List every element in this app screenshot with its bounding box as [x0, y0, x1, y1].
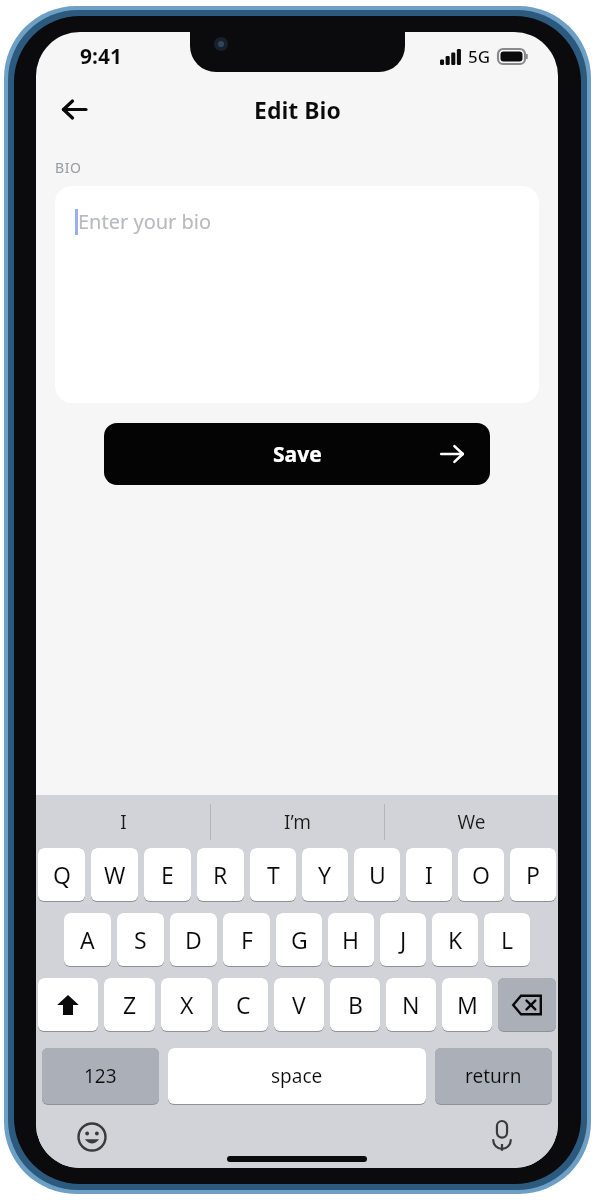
button[interactable]: J [380, 913, 426, 966]
button[interactable]: I [36, 795, 210, 848]
button[interactable]: K [432, 913, 478, 966]
button[interactable] [38, 978, 98, 1031]
button[interactable]: space [168, 1048, 426, 1104]
button[interactable]: B [330, 978, 380, 1031]
staticText: W [104, 859, 126, 890]
staticText: G [291, 924, 308, 955]
button[interactable]: X [161, 978, 212, 1031]
staticText: Save [273, 440, 322, 469]
staticText: N [402, 989, 420, 1020]
button[interactable]: C [218, 978, 268, 1031]
staticText: I [120, 809, 127, 835]
button[interactable]: M [442, 978, 492, 1031]
button[interactable]: H [328, 913, 374, 966]
button[interactable]: N [386, 978, 436, 1031]
staticText: L [501, 924, 514, 955]
staticText: X [180, 989, 194, 1020]
staticText: return [465, 1063, 522, 1089]
button[interactable]: Z [104, 978, 155, 1031]
button[interactable]: Emoji keyboard [72, 1117, 112, 1157]
staticText: F [241, 924, 253, 955]
button[interactable]: P [510, 848, 556, 901]
button[interactable] [498, 978, 556, 1031]
staticText: BIO [55, 158, 82, 177]
button[interactable]: return [435, 1048, 552, 1104]
button[interactable]: T [250, 848, 296, 901]
button[interactable]: I [406, 848, 452, 901]
button[interactable]: Y [302, 848, 348, 901]
staticText: J [400, 924, 407, 955]
staticText: We [457, 809, 486, 835]
button[interactable]: R [197, 848, 244, 901]
button[interactable]: W [91, 848, 138, 901]
button[interactable]: Q [38, 848, 85, 901]
button[interactable]: Back [50, 85, 98, 133]
staticText: A [80, 924, 95, 955]
staticText: U [369, 859, 386, 890]
staticText: R [213, 859, 228, 890]
staticText: V [292, 989, 306, 1020]
staticText: I’m [284, 809, 311, 835]
staticText: T [267, 859, 280, 890]
staticText: D [185, 924, 202, 955]
staticText: Enter your bio [78, 208, 212, 235]
staticText: B [348, 989, 363, 1020]
button[interactable]: F [223, 913, 270, 966]
staticText: 5G [468, 45, 491, 68]
staticText: Edit Bio [254, 94, 341, 125]
button[interactable]: Save [104, 423, 490, 485]
button[interactable]: U [354, 848, 400, 901]
other: Backspace [498, 978, 556, 1033]
button[interactable]: I’m [211, 795, 384, 848]
staticText: space [271, 1063, 323, 1089]
button[interactable]: E [144, 848, 191, 901]
staticText: M [457, 989, 478, 1020]
button[interactable]: A [64, 913, 111, 966]
staticText: Q [53, 859, 71, 890]
staticText: 9:41 [80, 42, 122, 71]
staticText: K [448, 924, 463, 955]
staticText: O [472, 859, 490, 890]
staticText: S [134, 924, 147, 955]
button[interactable]: Enter your bio [55, 186, 539, 403]
staticText: 123 [84, 1063, 117, 1089]
button[interactable]: Dictation [482, 1117, 522, 1157]
staticText: Z [123, 989, 137, 1020]
button[interactable]: G [276, 913, 322, 966]
button[interactable]: S [117, 913, 164, 966]
button[interactable]: 123 [42, 1048, 159, 1104]
staticText: E [161, 859, 174, 890]
button[interactable]: V [274, 978, 324, 1031]
staticText: I [425, 859, 433, 890]
staticText: H [342, 924, 360, 955]
staticText: C [236, 989, 251, 1020]
staticText: P [526, 859, 540, 890]
button[interactable]: O [458, 848, 504, 901]
button[interactable]: We [385, 795, 558, 848]
button[interactable]: L [484, 913, 530, 966]
button[interactable]: D [170, 913, 217, 966]
staticText: Y [318, 859, 332, 890]
